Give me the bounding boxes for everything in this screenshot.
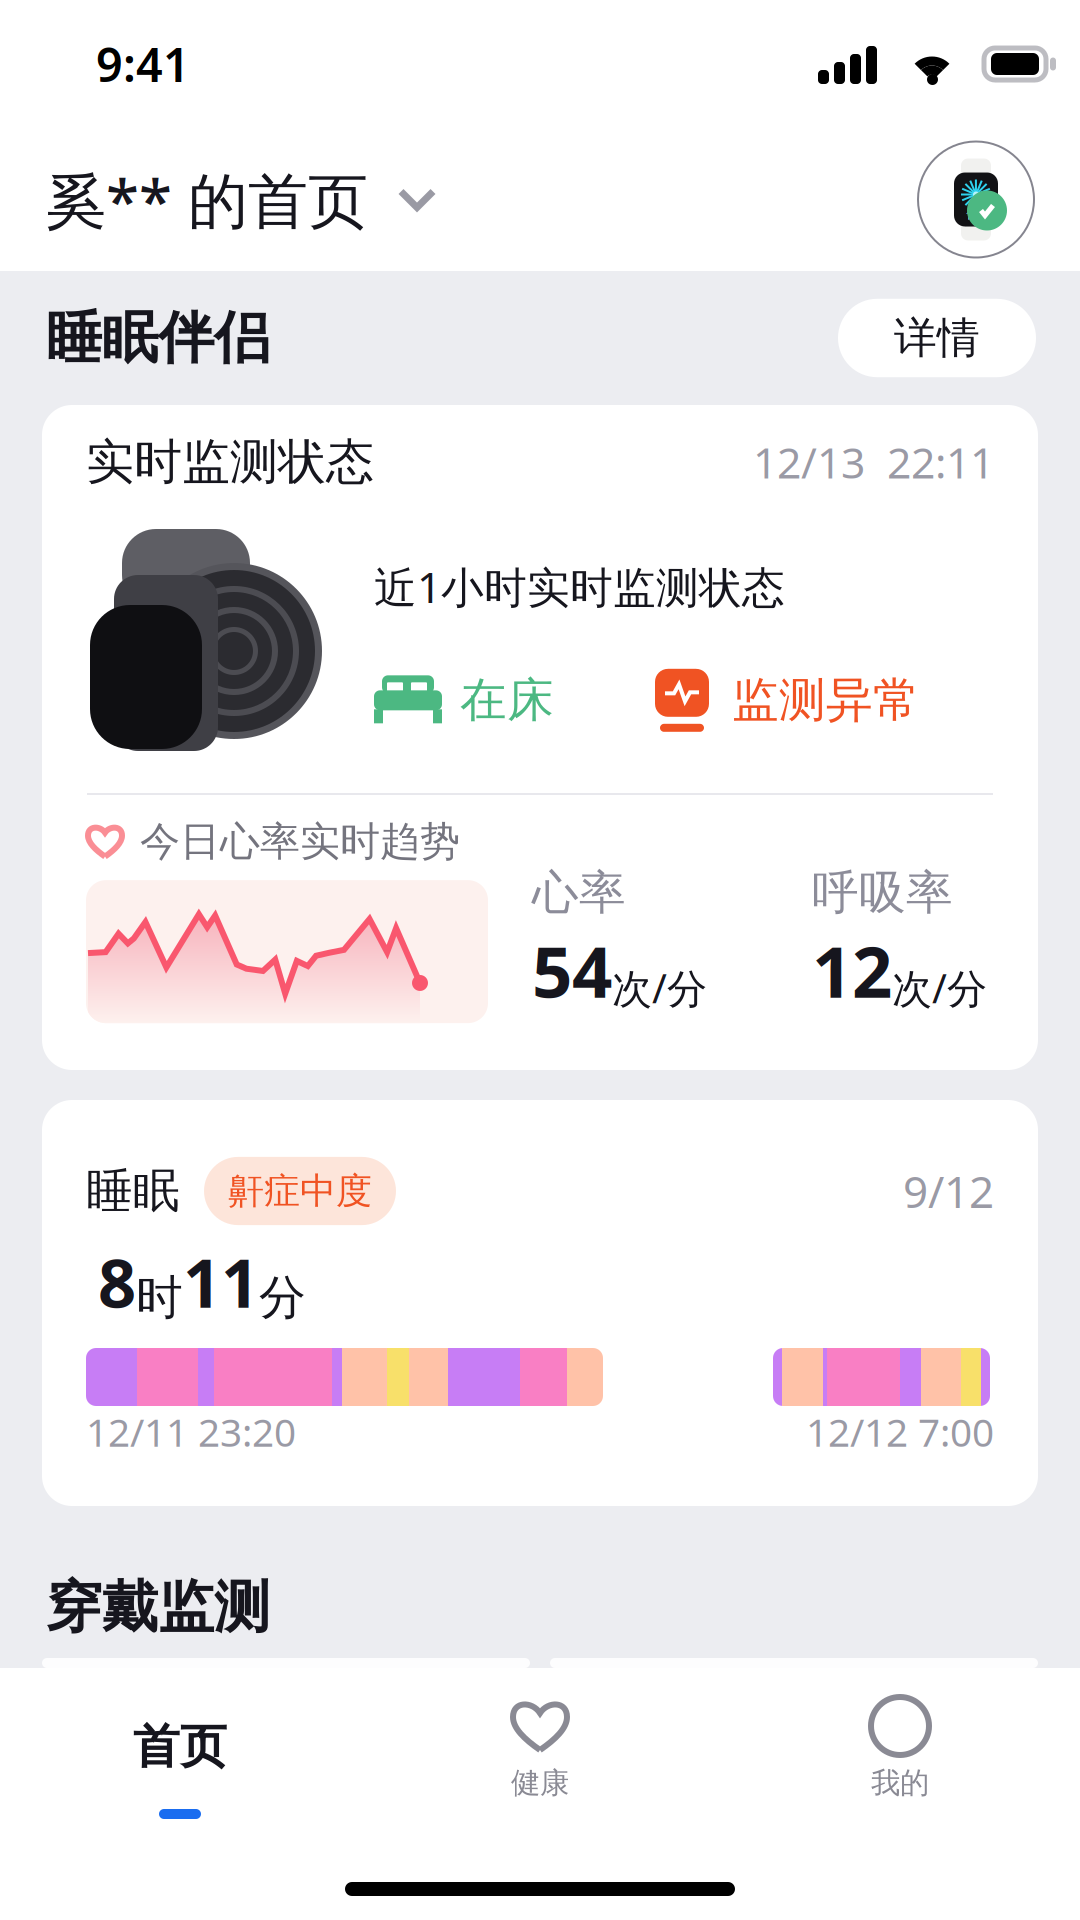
staticText: 详情 — [894, 312, 980, 364]
button[interactable]: 健康 — [360, 1697, 720, 1857]
staticText: 9:41 — [96, 33, 190, 95]
staticText: 8 — [98, 1238, 136, 1326]
staticText: 10:0 — [965, 208, 986, 223]
staticText: 我的 — [871, 1765, 929, 1801]
button[interactable]: 详情 — [838, 299, 1036, 377]
staticText: 次/分 — [892, 961, 987, 1014]
staticText: 呼吸率 — [812, 864, 953, 921]
staticText: 睡眠伴侣 — [46, 304, 270, 372]
button[interactable]: 首页 — [0, 1697, 360, 1857]
staticText: 时 — [136, 1269, 183, 1326]
staticText: 实时监测状态 — [86, 432, 374, 491]
staticText: 今日心率实时趋势 — [140, 817, 460, 866]
button[interactable]: 我的 — [720, 1697, 1080, 1857]
staticText: 次/分 — [612, 961, 707, 1014]
button[interactable]: Connected watch — [918, 141, 1034, 257]
staticText: 54 — [532, 923, 612, 1017]
staticText: 健康 — [511, 1765, 569, 1801]
staticText: 穿戴监测 — [46, 1573, 270, 1642]
button[interactable]: 奚** 的首页 — [46, 150, 436, 249]
staticText: 奚** 的首页 — [46, 160, 368, 239]
staticText: 近1小时实时监测状态 — [374, 558, 785, 615]
staticText: 12/11 23:20 — [86, 1406, 296, 1457]
staticText: 12/12 7:00 — [806, 1406, 994, 1457]
staticText: 心率 — [532, 864, 626, 921]
staticText: 首页 — [133, 1718, 227, 1775]
staticText: 分 — [259, 1269, 306, 1326]
staticText: 11 — [183, 1238, 259, 1326]
staticText: 鼾症中度 — [228, 1169, 372, 1213]
staticText: 12 — [812, 923, 892, 1017]
staticText: 监测异常 — [732, 672, 920, 729]
staticText: 在床 — [460, 672, 554, 729]
staticText: 12/13 22:11 — [753, 434, 994, 490]
staticText: 睡眠 — [86, 1162, 180, 1220]
staticText: 9/12 — [903, 1162, 994, 1220]
